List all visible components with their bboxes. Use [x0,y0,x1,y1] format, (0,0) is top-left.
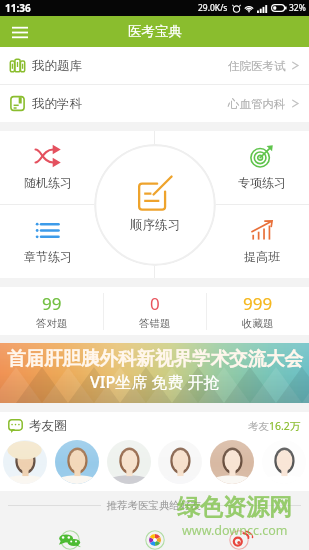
staticText: 专项练习 [238,175,286,190]
staticText: 顺序练习 [130,217,180,233]
button[interactable]: Friend avatar [55,440,99,484]
button[interactable]: 考友圈 [0,412,309,440]
staticText: 章节练习 [24,249,72,264]
button[interactable]: 专项练习 [214,131,309,204]
button[interactable]: Friend avatar [3,440,47,484]
staticText: 提高班 [244,249,280,264]
staticText: 随机练习 [24,175,72,190]
button[interactable]: Share to Weibo [224,530,254,550]
button[interactable]: Share to WeChat [55,530,85,550]
button[interactable]: Friend avatar [158,440,202,484]
staticText: 29.0K/s [198,2,228,14]
staticText: 11:36 [5,1,31,15]
staticText: 心血管内科 [228,97,286,111]
button[interactable]: 提高班 [214,204,309,278]
button[interactable]: 999 [207,287,309,335]
staticText: 16.2万 [269,419,301,433]
staticText: 答对题 [36,317,68,330]
staticText: 我的题库 [32,58,82,74]
button[interactable]: 章节练习 [0,204,95,278]
button[interactable]: 随机练习 [0,131,95,204]
button[interactable]: 顺序练习 [94,144,216,266]
button[interactable]: Menu [6,18,34,46]
staticText: 绿色资源网 [177,493,292,522]
staticText: VIP坐席 免费 开抢 [90,371,220,393]
button[interactable]: 我的学科 [0,85,309,122]
staticText: 答错题 [139,317,171,330]
button[interactable]: Friend avatar [210,440,254,484]
staticText: 32% [289,2,306,14]
button[interactable]: 0 [104,287,206,335]
staticText: 考友圈 [29,418,67,434]
button[interactable]: 99 [0,287,103,335]
staticText: 我的学科 [32,96,82,112]
button[interactable]: Friend avatar [107,440,151,484]
staticText: 收藏题 [242,317,274,330]
staticText: 住院医考试 [228,59,286,73]
button[interactable]: 我的题库 [0,47,309,84]
staticText: 医考宝典 [128,23,182,40]
button[interactable]: Friend avatar [262,440,306,484]
staticText: 99 [42,292,62,315]
staticText: 0 [150,292,160,315]
staticText: 考友 [248,420,269,433]
staticText: www.downcc.com [182,522,288,539]
staticText: 推荐考医宝典给好友 [101,498,207,512]
button[interactable]: Share to Moments [140,530,170,550]
staticText: 999 [243,292,273,315]
staticText: 首届肝胆胰外科新视界学术交流大会 [7,347,303,370]
button[interactable]: 首届肝胆胰外科新视界学术交流大会 [0,343,309,403]
